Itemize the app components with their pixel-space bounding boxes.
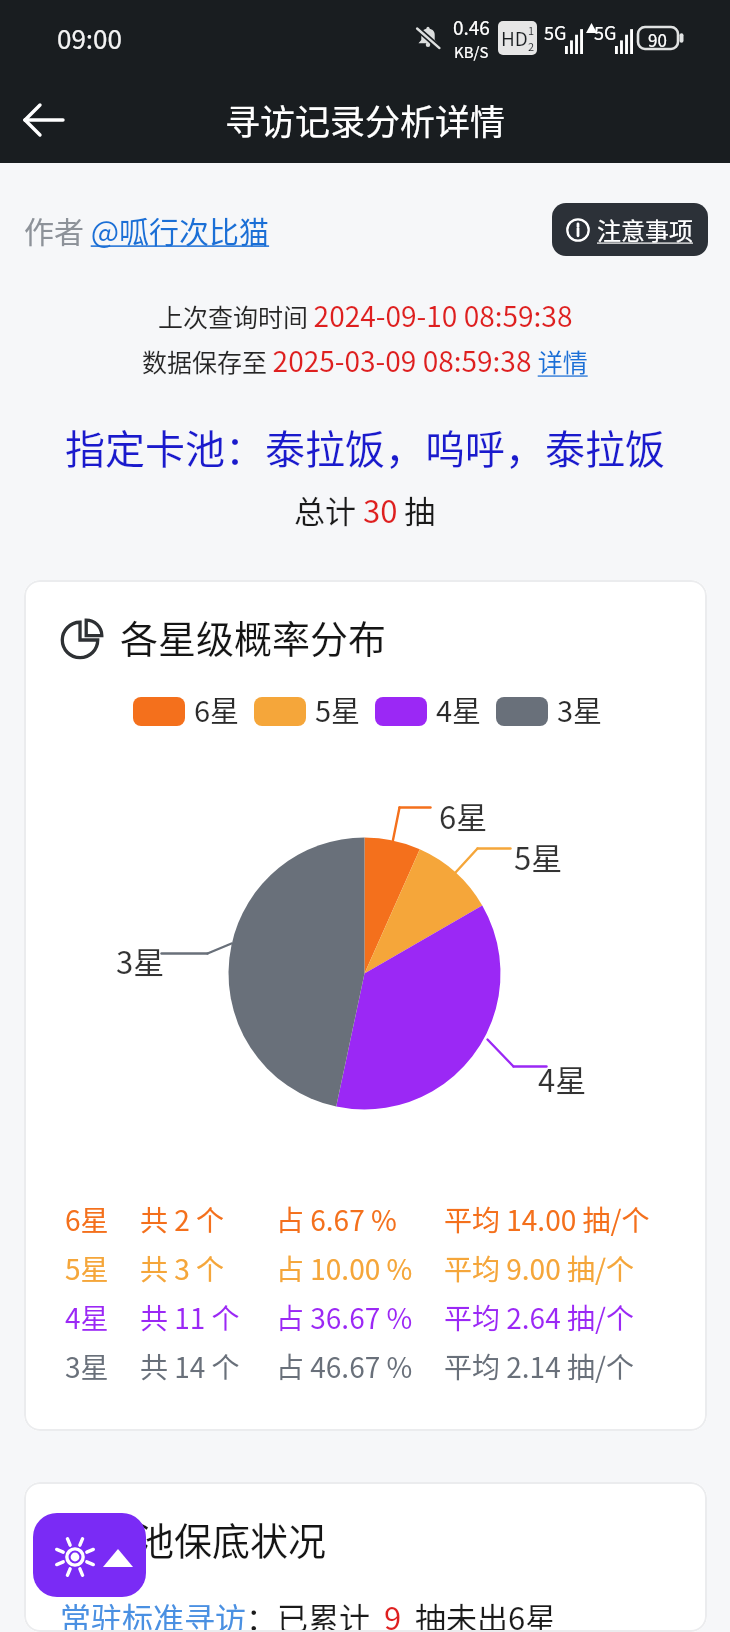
staticText: 4星 (538, 1056, 587, 1101)
staticText: 5星 (65, 1248, 109, 1289)
staticText: 5星 (315, 688, 361, 727)
button[interactable]: Toggle brightness (33, 1513, 146, 1597)
staticText: 占 6.67 % (276, 1199, 397, 1240)
staticText: 共 2 个 (140, 1199, 225, 1240)
staticText: 各卡池保底状况 (60, 1511, 327, 1566)
staticText: 注意事项 (597, 212, 693, 247)
staticText: 常驻标准寻访：已累计 9 抽未出6星 (60, 1594, 557, 1632)
staticText: 2 (528, 38, 535, 54)
staticText: 作者 @呱行次比猫 (24, 208, 270, 251)
staticText: 各星级概率分布 (120, 609, 387, 664)
staticText: 3星 (65, 1346, 109, 1387)
staticText: 6星 (194, 688, 240, 727)
staticText: 占 46.67 % (276, 1346, 413, 1387)
staticText: KB/S (454, 41, 489, 63)
button[interactable]: Back (12, 88, 76, 152)
staticText: 数据保存至 2025-03-09 08:59:38 详情 (142, 340, 588, 381)
staticText: HD (501, 24, 528, 52)
staticText: 寻访记录分析详情 (225, 94, 506, 145)
staticText: 共 11 个 (140, 1297, 240, 1338)
staticText: 4星 (436, 688, 482, 727)
staticText: 总计 30 抽 (294, 487, 436, 532)
staticText: 3星 (557, 688, 603, 727)
button[interactable]: 注意事项 (552, 203, 708, 256)
staticText: 指定卡池：泰拉饭，呜呼，泰拉饭 (65, 418, 665, 476)
staticText: 09:00 (57, 19, 122, 57)
staticText: 平均 2.14 抽/个 (444, 1346, 634, 1387)
staticText: 1 (528, 22, 535, 38)
staticText: 共 3 个 (140, 1248, 225, 1289)
staticText: 5G (594, 19, 617, 45)
staticText: 6星 (439, 793, 488, 838)
staticText: 5G (544, 19, 567, 45)
staticText: 5星 (514, 834, 563, 879)
staticText: 平均 9.00 抽/个 (444, 1248, 634, 1289)
staticText: 4星 (65, 1297, 109, 1338)
staticText: 6星 (65, 1199, 109, 1240)
staticText: 占 10.00 % (276, 1248, 413, 1289)
staticText: 共 14 个 (140, 1346, 240, 1387)
staticText: 平均 2.64 抽/个 (444, 1297, 634, 1338)
staticText: 90 (648, 27, 667, 49)
staticText: 0.46 (453, 13, 490, 41)
staticText: 3星 (116, 938, 165, 983)
staticText: 平均 14.00 抽/个 (444, 1199, 650, 1240)
staticText: 上次查询时间 2024-09-10 08:59:38 (158, 295, 573, 336)
staticText: 占 36.67 % (276, 1297, 413, 1338)
